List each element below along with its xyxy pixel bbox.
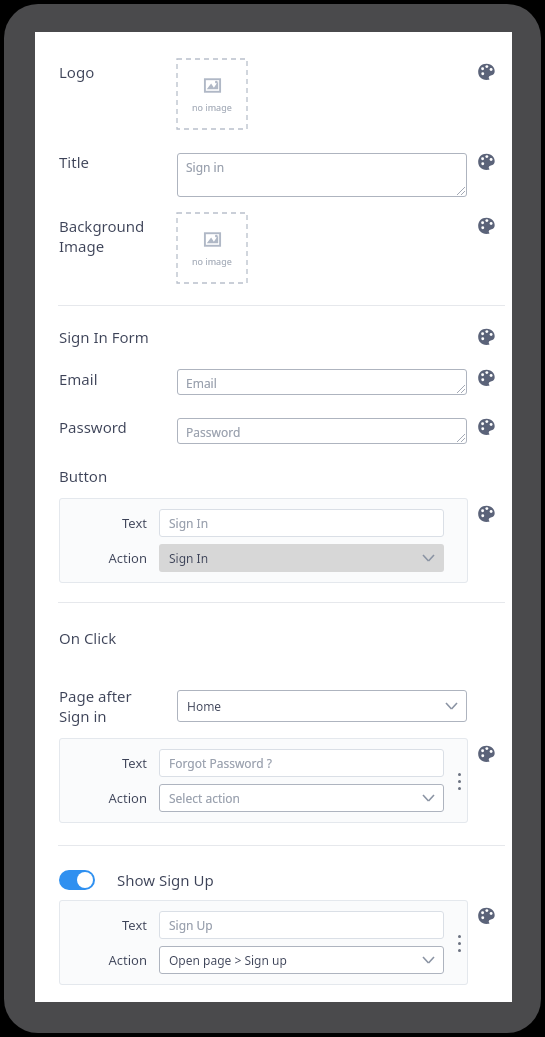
staticText: Sign Up bbox=[169, 917, 213, 933]
staticText: Sign In bbox=[169, 550, 209, 566]
button[interactable]: Email bbox=[177, 369, 467, 395]
button[interactable]: Sign Up bbox=[159, 911, 444, 939]
button[interactable]: Password bbox=[177, 418, 467, 444]
staticText: Sign in bbox=[186, 159, 225, 175]
staticText: Button bbox=[59, 466, 108, 486]
staticText: Password bbox=[59, 417, 127, 437]
staticText: Title bbox=[59, 152, 89, 172]
button[interactable]: Style background image bbox=[473, 212, 499, 238]
staticText: On Click bbox=[59, 628, 117, 648]
button[interactable]: Style forgot password bbox=[473, 740, 499, 766]
staticText: Text bbox=[122, 754, 147, 772]
button[interactable]: Style sign up bbox=[473, 902, 499, 928]
staticText: Forgot Password ? bbox=[169, 755, 273, 771]
staticText: Background Image bbox=[59, 216, 145, 256]
button[interactable]: Sign In bbox=[159, 509, 444, 537]
button[interactable]: Sign In bbox=[159, 544, 444, 572]
staticText: Open page > Sign up bbox=[169, 952, 287, 968]
staticText: Action bbox=[108, 789, 147, 807]
staticText: Action bbox=[108, 549, 147, 567]
staticText: Sign In Form bbox=[59, 327, 149, 347]
staticText: Show Sign Up bbox=[117, 870, 214, 890]
staticText: Text bbox=[122, 514, 147, 532]
button[interactable]: Show Sign Up toggle bbox=[59, 870, 95, 890]
button[interactable]: Style password bbox=[473, 413, 499, 439]
button[interactable]: Style form bbox=[473, 323, 499, 349]
staticText: Select action bbox=[169, 790, 241, 806]
staticText: Email bbox=[59, 369, 98, 389]
staticText: no image bbox=[192, 255, 232, 267]
staticText: Logo bbox=[59, 62, 95, 82]
staticText: Action bbox=[108, 951, 147, 969]
staticText: Email bbox=[186, 375, 217, 391]
staticText: Page after Sign in bbox=[59, 686, 132, 726]
button[interactable]: Style logo bbox=[473, 58, 499, 84]
button[interactable]: More options bbox=[449, 925, 469, 961]
staticText: Home bbox=[187, 698, 222, 714]
button[interactable]: Forgot Password ? bbox=[159, 749, 444, 777]
button[interactable]: Pick image bbox=[177, 213, 247, 283]
button[interactable]: Open page > Sign up bbox=[159, 946, 444, 974]
button[interactable]: Home bbox=[177, 690, 467, 722]
staticText: Sign In bbox=[169, 515, 209, 531]
staticText: no image bbox=[192, 101, 232, 113]
button[interactable]: Pick image bbox=[177, 59, 247, 129]
button[interactable]: Style email bbox=[473, 364, 499, 390]
staticText: Password bbox=[186, 424, 241, 440]
button[interactable]: Style button bbox=[473, 500, 499, 526]
button[interactable]: Show Sign Up toggle bbox=[49, 864, 224, 896]
staticText: Text bbox=[122, 916, 147, 934]
button[interactable]: More options bbox=[449, 763, 469, 799]
button[interactable]: Style title bbox=[473, 148, 499, 174]
button[interactable]: Select action bbox=[159, 784, 444, 812]
button[interactable]: Sign in bbox=[177, 153, 467, 197]
